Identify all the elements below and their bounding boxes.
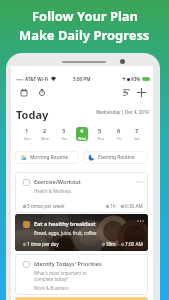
- staticText: Identify Todays' Priorities: [34, 260, 102, 268]
- staticText: Fri: [117, 136, 122, 141]
- staticText: Exercise/Workout: [34, 178, 81, 186]
- staticText: Health & Wellness: [34, 188, 72, 194]
- button[interactable]: 4: [76, 127, 88, 141]
- button[interactable]: 2: [39, 127, 51, 141]
- staticText: Eat a healthy breakfast: [34, 220, 96, 228]
- staticText: Wednesday | Dec 4, 2019: [96, 109, 149, 115]
- staticText: 1: [25, 127, 29, 135]
- button[interactable]: 6: [113, 127, 125, 141]
- staticText: 6: [117, 127, 121, 135]
- staticText: 7:00 AM: [125, 241, 143, 247]
- staticText: 93%: [131, 76, 141, 82]
- staticText: Follow Your Plan: [32, 7, 138, 25]
- staticText: Evening Routine: [98, 154, 135, 161]
- staticText: 3: [62, 127, 66, 135]
- staticText: Work & Business: [34, 285, 69, 291]
- staticText: Make Daily Progress: [19, 26, 150, 44]
- staticText: Morning Routine: [30, 154, 69, 161]
- button[interactable]: More options: [135, 178, 143, 186]
- staticText: AT&T Wi-Fi: [25, 76, 49, 82]
- button[interactable]: 7: [131, 127, 143, 141]
- button[interactable]: More options: [136, 217, 144, 225]
- staticText: 1 time per day: [27, 241, 59, 247]
- button[interactable]: 5: [94, 127, 106, 141]
- staticText: 7: [135, 127, 139, 135]
- button[interactable]: Sort: [120, 86, 132, 98]
- button[interactable]: Add: [135, 86, 147, 98]
- staticText: Thu: [97, 136, 104, 141]
- staticText: 5: [98, 127, 102, 135]
- staticText: complete today?: [34, 276, 69, 282]
- staticText: 1h: [110, 203, 116, 209]
- button[interactable]: 3: [58, 127, 70, 141]
- button[interactable]: Morning Routine: [15, 151, 79, 164]
- button[interactable]: More options: [15, 214, 148, 251]
- staticText: Today: [16, 107, 49, 121]
- staticText: 6:30 AM: [125, 203, 143, 209]
- button[interactable]: Timer: [36, 86, 48, 98]
- staticText: 5:00 PM: [73, 76, 91, 82]
- button[interactable]: Evening Routine: [83, 151, 148, 164]
- button[interactable]: Exercise/Workout: [15, 172, 148, 213]
- staticText: What's most important to: [34, 270, 87, 276]
- staticText: Bread, eggs, juice, fruit, coffee: [34, 230, 97, 236]
- staticText: Wed: [78, 136, 86, 141]
- staticText: Tue: [61, 136, 68, 141]
- staticText: 2: [43, 127, 47, 135]
- staticText: Mon: [41, 136, 50, 141]
- staticText: Sun: [24, 136, 31, 141]
- staticText: 30m: [106, 241, 116, 247]
- staticText: Sat: [134, 136, 140, 141]
- staticText: 5 times per week: [27, 203, 65, 209]
- button[interactable]: Calendar: [18, 86, 30, 98]
- button[interactable]: Identify Todays' Priorities: [15, 254, 148, 295]
- staticText: 4: [80, 127, 84, 135]
- button[interactable]: 1: [21, 127, 33, 141]
